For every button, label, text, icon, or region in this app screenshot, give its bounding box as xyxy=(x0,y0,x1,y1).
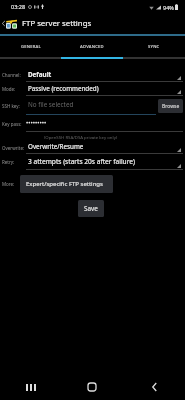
staticText: 94% xyxy=(163,4,174,11)
staticText: Browse xyxy=(162,103,180,110)
staticText: No file selected xyxy=(28,100,74,109)
staticText: Key pass: xyxy=(2,121,22,127)
button[interactable]: SYNC xyxy=(123,36,185,57)
button[interactable]: Browse xyxy=(158,99,183,113)
staticText: Retry: xyxy=(2,159,15,165)
staticText: GENERAL xyxy=(21,44,41,50)
staticText: FTP server settings xyxy=(22,18,92,29)
staticText: More: xyxy=(2,181,15,187)
button[interactable]: Back xyxy=(0,13,6,34)
staticText: (OpenSSH RSA/DSA private key only) xyxy=(44,134,118,140)
staticText: Overwrite/Resume xyxy=(28,142,84,151)
staticText: ••••••••• xyxy=(26,119,47,127)
staticText: 3 attempts (starts 20s after failure) xyxy=(28,157,135,166)
button[interactable]: Recent apps xyxy=(0,374,61,400)
staticText: Overwrite: xyxy=(2,145,25,151)
button[interactable]: ADVANCED xyxy=(61,36,123,57)
button[interactable]: Save xyxy=(78,200,104,217)
button[interactable]: Home xyxy=(61,374,123,400)
button[interactable]: Mode: xyxy=(0,82,185,96)
button[interactable]: GENERAL xyxy=(0,36,61,57)
staticText: SSH key: xyxy=(2,103,20,109)
button[interactable]: Retry: xyxy=(0,154,185,170)
staticText: Expert/specific FTP settings xyxy=(26,180,103,188)
staticText: 03:28 xyxy=(11,3,26,10)
button[interactable]: Back xyxy=(123,374,185,400)
button[interactable]: Key pass: xyxy=(0,115,185,132)
staticText: ADVANCED xyxy=(80,44,104,50)
button[interactable]: Overwrite: xyxy=(0,141,185,154)
button[interactable]: Channel: xyxy=(0,68,185,82)
staticText: Mode: xyxy=(2,86,16,92)
staticText: SYNC xyxy=(148,44,160,50)
staticText: Channel: xyxy=(2,72,21,78)
button[interactable]: Expert/specific FTP settings xyxy=(20,175,113,193)
staticText: Passive (recommended) xyxy=(28,84,99,93)
staticText: Default xyxy=(28,70,52,79)
staticText: Save xyxy=(84,204,98,213)
